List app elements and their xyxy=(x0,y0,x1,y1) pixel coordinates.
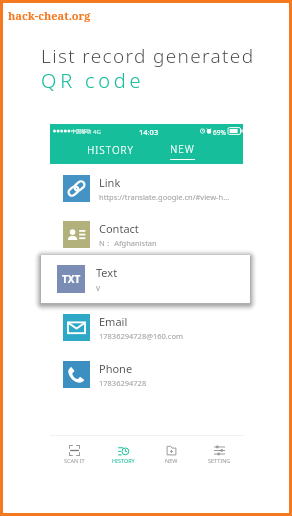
other: Contact xyxy=(63,221,90,248)
staticText: List record generated xyxy=(41,43,255,69)
staticText: Phone xyxy=(99,361,133,376)
staticText: NEW xyxy=(165,457,178,464)
staticText: Text xyxy=(96,265,118,280)
staticText: 中国移动 xyxy=(71,128,91,134)
staticText: 69% xyxy=(213,128,226,137)
button[interactable]: Text xyxy=(41,255,250,303)
staticText: hack-cheat.org xyxy=(8,8,91,23)
button[interactable]: Link xyxy=(50,165,243,211)
button[interactable]: Phone xyxy=(50,351,243,397)
button[interactable]: SETTING xyxy=(195,445,243,475)
button[interactable]: HISTORY xyxy=(99,445,147,475)
staticText: v xyxy=(96,282,101,293)
button[interactable]: Email xyxy=(50,304,243,350)
other: Link xyxy=(63,175,90,202)
staticText: TXT xyxy=(62,272,81,286)
staticText: 14:03 xyxy=(139,127,159,137)
staticText: 17836294728 xyxy=(99,378,233,388)
staticText: Contact xyxy=(99,221,139,236)
staticText: SETTING xyxy=(208,457,231,464)
staticText: Link xyxy=(99,175,121,190)
staticText: HISTORY xyxy=(87,143,134,157)
staticText: 4G xyxy=(93,128,101,136)
button[interactable]: NEW xyxy=(147,138,217,164)
staticText: 17836294728@160.com xyxy=(99,331,233,341)
staticText: NEW xyxy=(170,142,195,156)
staticText: SCAN IT xyxy=(64,457,85,464)
staticText: https://translate.google.cn/#view-hom... xyxy=(99,192,233,202)
button[interactable]: SCAN IT xyxy=(50,445,99,475)
other: Email xyxy=(63,314,90,341)
button[interactable]: HISTORY xyxy=(75,138,145,164)
staticText: N： Afghanistan xyxy=(99,238,233,248)
staticText: Email xyxy=(99,314,128,329)
button[interactable]: Contact xyxy=(50,211,243,257)
other: Text xyxy=(57,265,85,293)
staticText: QR code xyxy=(41,67,145,94)
other: Phone xyxy=(63,361,90,388)
staticText: HISTORY xyxy=(112,457,135,464)
button[interactable]: NEW xyxy=(147,445,195,475)
